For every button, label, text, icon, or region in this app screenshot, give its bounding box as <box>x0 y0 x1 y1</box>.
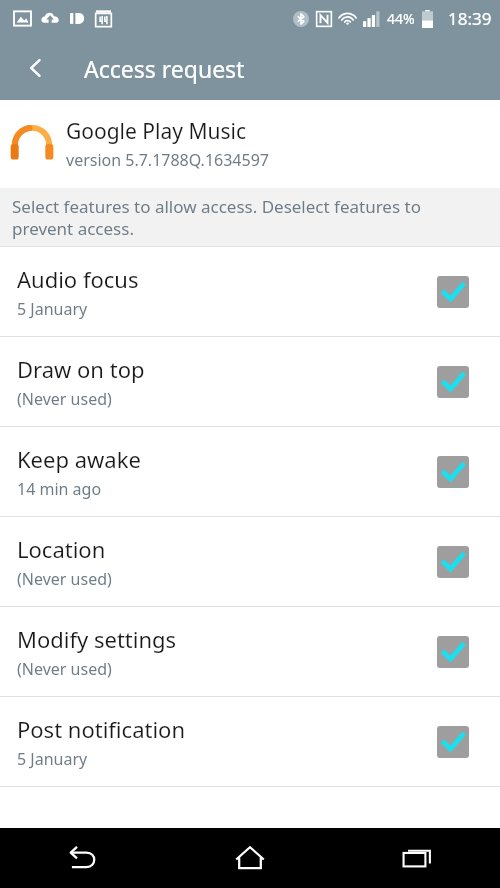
button[interactable]: Location <box>0 517 500 606</box>
button[interactable]: Back <box>0 828 166 888</box>
button[interactable]: Home <box>166 828 333 888</box>
staticText: 44% <box>387 9 415 28</box>
staticText: 14 min ago <box>17 478 102 500</box>
staticText: Access request <box>84 53 245 84</box>
staticText: Keep awake <box>17 444 141 474</box>
staticText: Post notification <box>17 714 186 744</box>
button[interactable]: Draw on top <box>0 337 500 426</box>
staticText: (Never used) <box>17 568 112 590</box>
staticText: Location <box>17 534 106 564</box>
staticText: 5 January <box>17 298 88 320</box>
staticText: Modify settings <box>17 624 177 654</box>
staticText: Select features to allow access. Deselec… <box>12 195 474 240</box>
button[interactable]: Modify settings <box>0 607 500 696</box>
button[interactable]: Keep awake <box>0 427 500 516</box>
staticText: Audio focus <box>17 264 139 294</box>
staticText: 18:39 <box>448 7 492 30</box>
button[interactable]: Back <box>10 42 62 94</box>
staticText: (Never used) <box>17 658 112 680</box>
staticText: 5 January <box>17 748 88 770</box>
staticText: version 5.7.1788Q.1634597 <box>66 149 269 171</box>
staticText: Google Play Music <box>66 117 246 146</box>
button[interactable]: Recents <box>333 828 500 888</box>
staticText: Draw on top <box>17 354 145 384</box>
button[interactable]: Audio focus <box>0 247 500 336</box>
button[interactable]: Post notification <box>0 697 500 786</box>
staticText: (Never used) <box>17 388 112 410</box>
